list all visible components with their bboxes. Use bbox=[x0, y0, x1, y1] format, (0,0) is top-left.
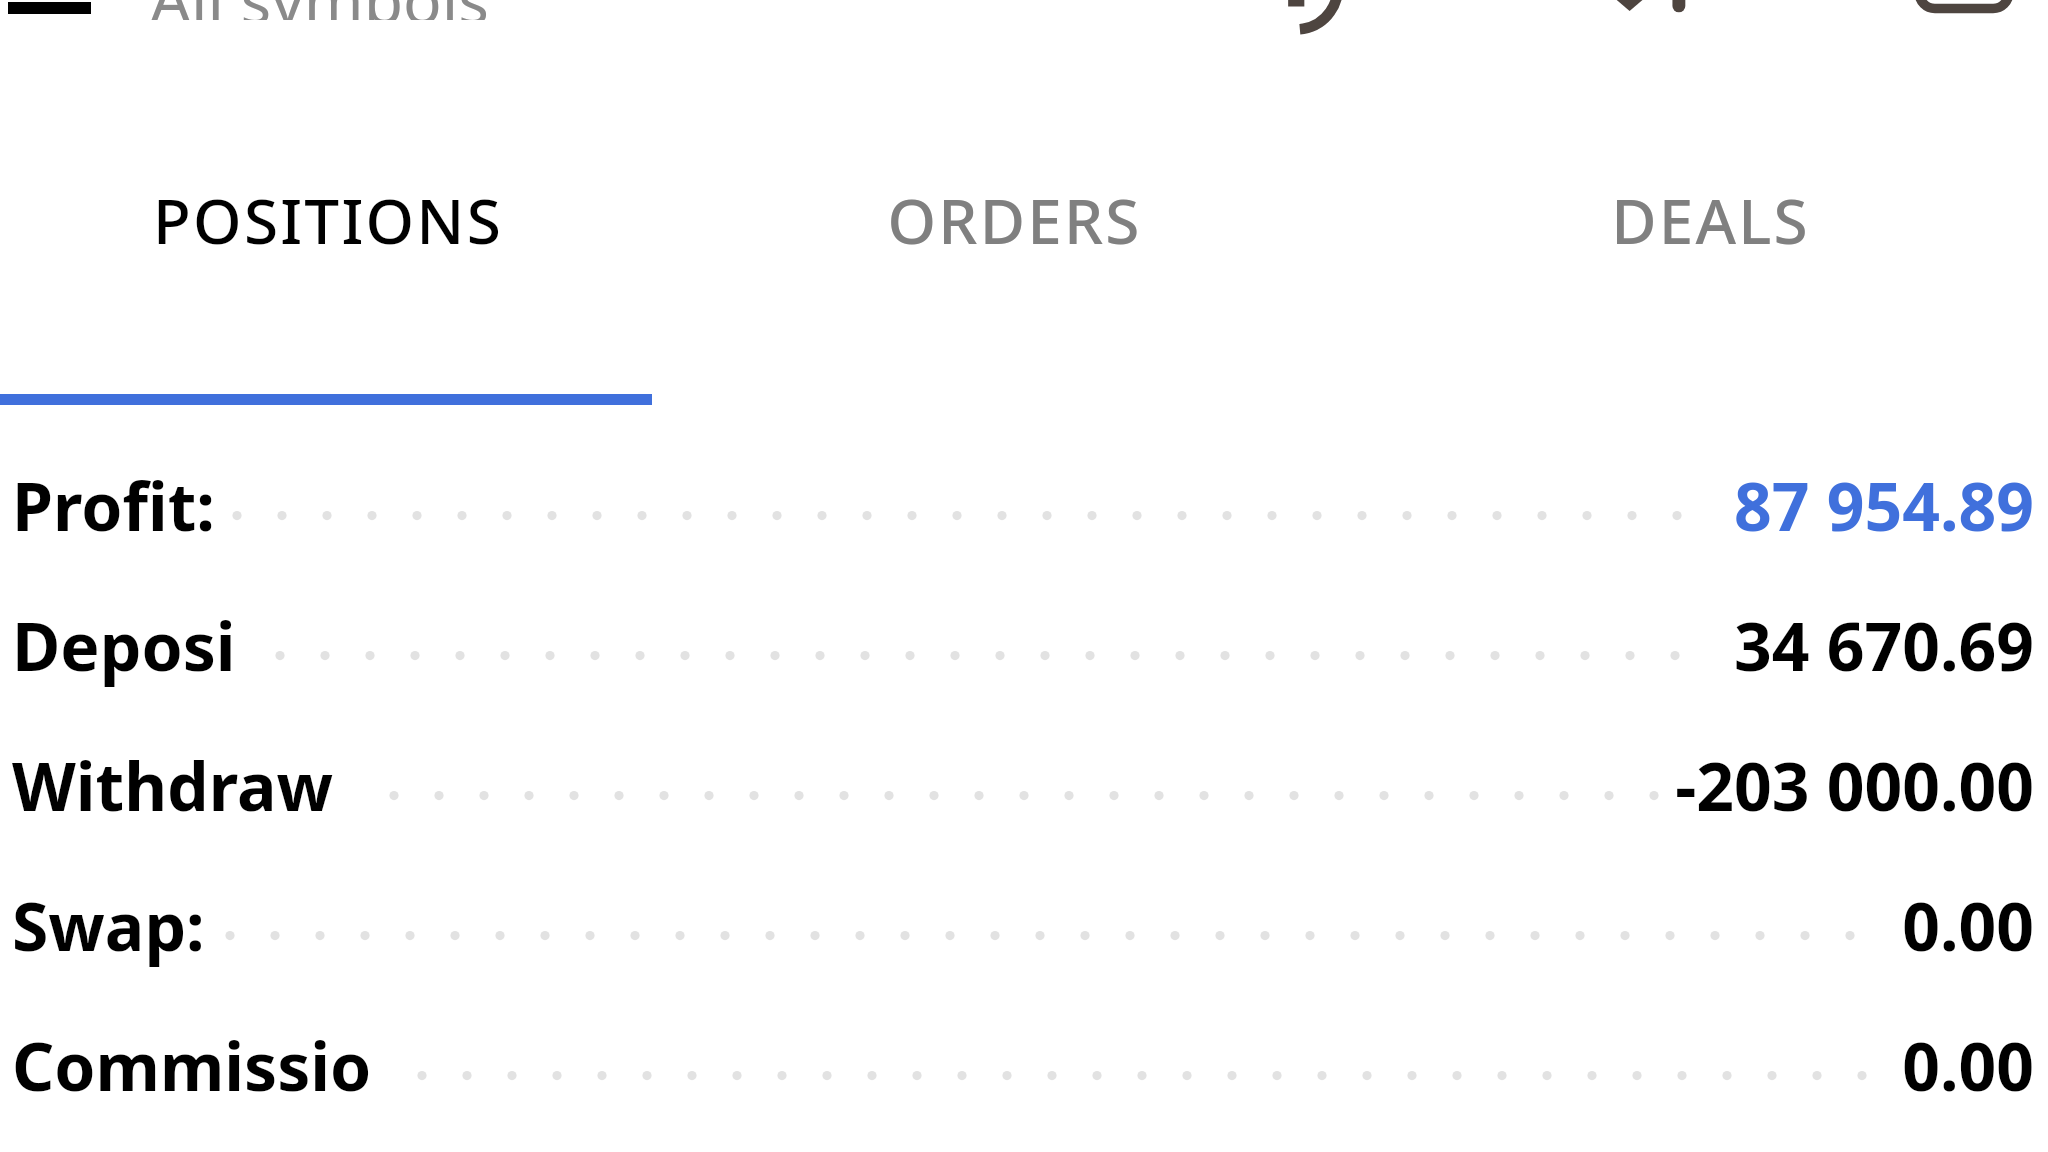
staticText: -203 000.00 bbox=[1675, 740, 2034, 830]
staticText: Withdrawal: bbox=[12, 740, 372, 830]
staticText: All symbols bbox=[150, 0, 489, 20]
staticText: 0.00 bbox=[1902, 1020, 2034, 1110]
staticText: Commission: bbox=[12, 1020, 400, 1110]
button[interactable]: DEALS bbox=[1373, 150, 2048, 310]
button[interactable]: All symbols bbox=[150, 0, 489, 20]
staticText: 34 670.69 bbox=[1734, 600, 2034, 690]
button[interactable]: ORDERS bbox=[655, 150, 1373, 310]
staticText: Deposit bbox=[12, 600, 258, 690]
button[interactable]: Commission: bbox=[0, 1012, 2048, 1118]
button[interactable]: Sort bbox=[1238, 0, 1350, 20]
button[interactable]: Sort descending bbox=[1596, 0, 1708, 20]
staticText: DEALS bbox=[1611, 178, 1810, 262]
staticText: ORDERS bbox=[887, 178, 1142, 262]
button[interactable]: Swap: bbox=[0, 872, 2048, 978]
staticText: Profit: bbox=[12, 460, 215, 550]
staticText: 87 954.89 bbox=[1734, 460, 2034, 550]
button[interactable]: More options bbox=[1908, 0, 2020, 20]
button[interactable]: POSITIONS bbox=[0, 150, 655, 310]
button[interactable]: Withdrawal: bbox=[0, 732, 2048, 838]
staticText: Swap: bbox=[12, 880, 205, 970]
button[interactable]: Deposit bbox=[0, 592, 2048, 698]
staticText: POSITIONS bbox=[153, 178, 503, 262]
button[interactable]: Profit: bbox=[0, 452, 2048, 558]
button[interactable]: Open navigation menu bbox=[0, 0, 96, 34]
staticText: 0.00 bbox=[1902, 880, 2034, 970]
